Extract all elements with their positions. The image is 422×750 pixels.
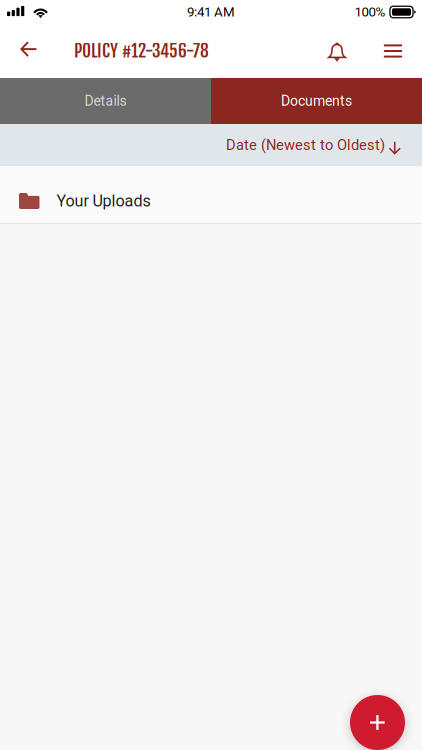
button[interactable]: Date (Newest to Oldest)	[226, 124, 422, 166]
button[interactable]: Back	[9, 24, 49, 78]
staticText: Date (Newest to Oldest)	[226, 136, 385, 154]
button[interactable]: POLICY #12-3456-78	[49, 24, 219, 78]
button[interactable]: Your Uploads	[0, 166, 422, 223]
staticText: 100%	[354, 4, 385, 20]
button[interactable]: Menu	[371, 24, 415, 78]
button[interactable]: Add document	[350, 695, 405, 750]
button[interactable]: Notifications	[314, 24, 360, 78]
button[interactable]: Documents	[211, 78, 422, 124]
staticText: 9:41 AM	[187, 4, 235, 20]
staticText: POLICY #12-3456-78	[74, 40, 209, 62]
button[interactable]: Details	[0, 78, 211, 124]
staticText: Details	[84, 93, 126, 109]
staticText: Documents	[281, 93, 352, 109]
staticText: Your Uploads	[56, 191, 150, 210]
